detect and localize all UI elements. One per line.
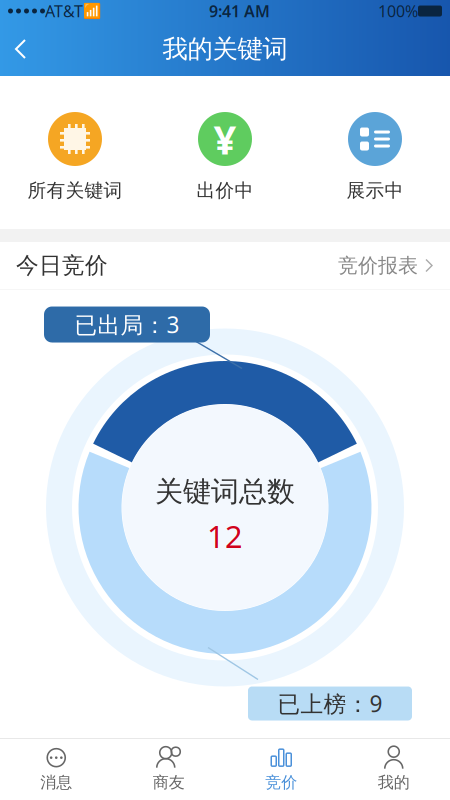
staticText: 📶 (83, 3, 101, 19)
staticText: 已出局：3 (74, 309, 179, 339)
button[interactable]: ¥ (150, 112, 300, 202)
staticText: 9:41 AM (209, 0, 270, 22)
staticText: 商友 (153, 773, 185, 792)
staticText: 展示中 (346, 179, 403, 202)
staticText: 竞价报表 (338, 253, 418, 278)
staticText: 关键词总数 (155, 474, 295, 509)
staticText: 我的关键词 (162, 33, 287, 64)
staticText: AT&T (45, 0, 83, 22)
button[interactable]: 商友 (112, 747, 225, 792)
staticText: 我的 (378, 773, 410, 792)
staticText: 12 (207, 516, 243, 556)
button[interactable]: 消息 (0, 747, 112, 792)
staticText: 消息 (40, 773, 72, 792)
button[interactable]: 我的 (337, 747, 450, 792)
button[interactable]: 展示中 (300, 112, 450, 202)
staticText: 竞价 (265, 773, 297, 792)
staticText: 出价中 (196, 179, 253, 202)
staticText: 今日竞价 (16, 252, 108, 279)
staticText: ¥ (213, 112, 236, 165)
staticText: 已上榜：9 (277, 688, 382, 718)
staticText: 所有关键词 (27, 179, 122, 202)
button[interactable]: 竞价报表 (338, 253, 434, 278)
button[interactable]: 竞价 (225, 747, 337, 792)
button[interactable]: 所有关键词 (0, 112, 150, 202)
staticText: 100% (378, 0, 418, 22)
button[interactable]: Back (10, 34, 40, 64)
